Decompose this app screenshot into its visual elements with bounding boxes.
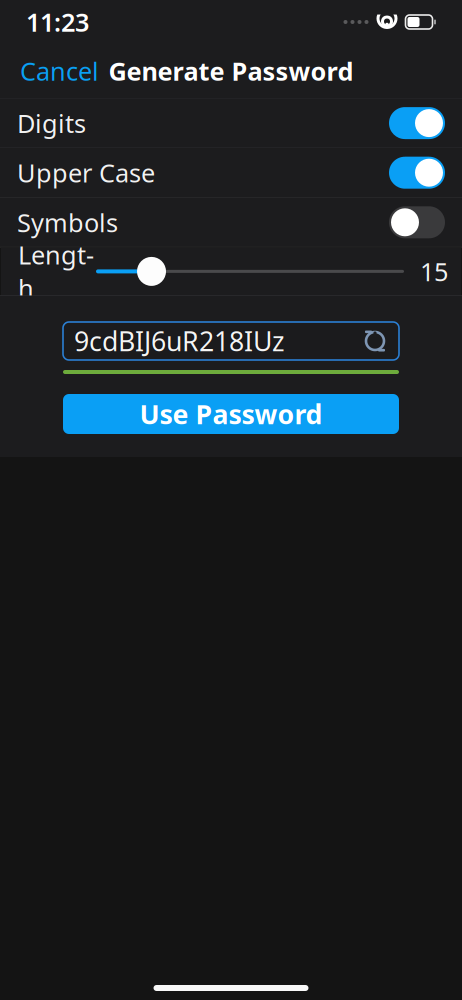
button[interactable]: Upper Case <box>0 148 462 197</box>
button[interactable]: Cancel <box>0 46 119 96</box>
staticText: Symbols <box>17 205 118 239</box>
button[interactable]: Symbols <box>0 198 462 247</box>
staticText: 15 <box>420 255 448 288</box>
button[interactable]: Regenerate password <box>358 324 392 358</box>
staticText: Generate Password <box>108 54 353 88</box>
button[interactable]: Digits <box>0 99 462 148</box>
staticText: Cancel <box>20 54 99 88</box>
staticText: Digits <box>17 106 86 140</box>
staticText: Upper Case <box>17 156 155 189</box>
staticText: Use Password <box>139 396 322 432</box>
staticText: 9cdBIJ6uR218IUz <box>74 323 285 359</box>
staticText: Length <box>18 238 94 305</box>
staticText: 11:23 <box>26 5 89 39</box>
button[interactable]: Use Password <box>63 394 399 434</box>
